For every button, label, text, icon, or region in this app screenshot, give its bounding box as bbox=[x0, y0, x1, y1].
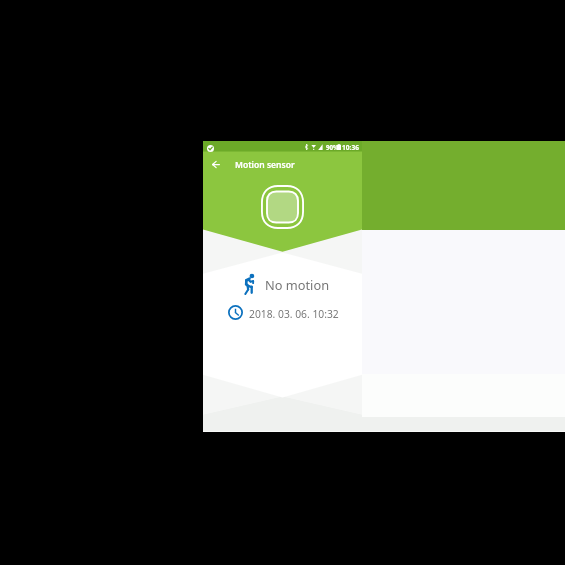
button[interactable]: Motion sensor device bbox=[261, 185, 304, 229]
button[interactable]: Back bbox=[205, 152, 227, 174]
staticText: No motion bbox=[265, 276, 330, 293]
button[interactable]: No motion bbox=[244, 273, 320, 295]
staticText: 10:36 bbox=[342, 143, 359, 152]
button[interactable]: 2018. 03. 06. 10:32 bbox=[228, 305, 333, 320]
staticText: 90% bbox=[326, 143, 339, 151]
staticText: Motion sensor bbox=[235, 159, 295, 171]
staticText: 2018. 03. 06. 10:32 bbox=[249, 307, 339, 321]
